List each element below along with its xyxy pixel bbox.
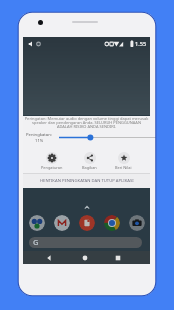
staticText: Bagikan [82,165,97,170]
button[interactable]: App [104,215,120,231]
staticText: Peringatan: Memutar audio dengan volume … [24,116,149,130]
button[interactable]: App [54,215,70,231]
button[interactable]: Bagikan [81,152,98,170]
button[interactable]: Back [46,254,54,262]
staticText: HENTIKAN PENINGKATAN DAN TUTUP APLIKASI [40,178,134,184]
button[interactable]: HENTIKAN PENINGKATAN DAN TUTUP APLIKASI [23,174,150,188]
staticText: 1.55 [135,40,147,48]
staticText: Pengaturan [41,165,63,170]
button[interactable]: Search [29,237,142,248]
button[interactable]: Recents [114,254,122,262]
button[interactable]: App [79,215,95,231]
button[interactable]: Pengaturan [40,152,64,170]
staticText: Beri Nilai [115,165,132,170]
button[interactable]: App [129,215,145,231]
staticText: G [33,237,39,247]
staticText: Peningkatan: [26,132,52,138]
button[interactable]: App [29,215,45,231]
staticText: 11% [35,138,44,144]
button[interactable]: Home [81,254,89,262]
button[interactable]: Beri Nilai [114,152,133,170]
